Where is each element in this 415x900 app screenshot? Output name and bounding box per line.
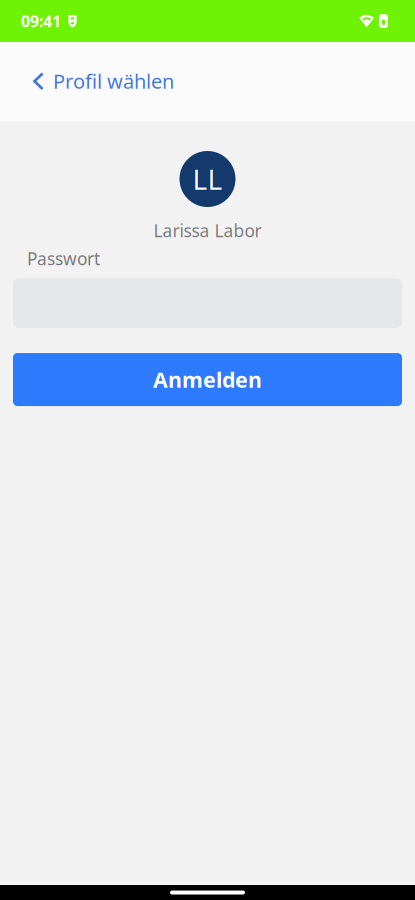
- button[interactable]: Anmelden: [0, 353, 415, 406]
- staticText: Passwort: [27, 247, 100, 270]
- staticText: Profil wählen: [53, 68, 174, 94]
- button[interactable]: Profil wählen: [21, 56, 186, 106]
- staticText: 09:41: [21, 10, 61, 32]
- staticText: LL: [192, 160, 222, 198]
- staticText: Larissa Labor: [153, 219, 261, 242]
- staticText: Anmelden: [153, 365, 262, 394]
